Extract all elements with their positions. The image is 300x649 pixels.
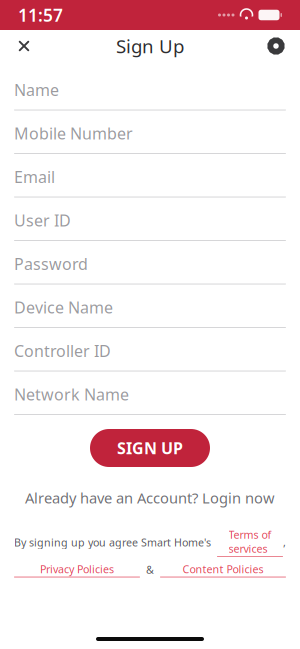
button[interactable]: Settings <box>256 30 296 62</box>
staticText: 11:57 <box>18 3 63 26</box>
staticText: Already have an Account? Login now <box>25 488 275 507</box>
staticText: , <box>283 535 286 549</box>
staticText: Content Policies <box>182 562 263 576</box>
button[interactable]: Terms of services <box>217 527 283 557</box>
staticText: Name <box>14 79 59 100</box>
staticText: SIGN UP <box>117 437 183 459</box>
staticText: Device Name <box>14 297 113 318</box>
staticText: Mobile Number <box>14 123 133 144</box>
staticText: Network Name <box>14 384 129 405</box>
staticText: Password <box>14 253 88 274</box>
staticText: & <box>140 563 160 577</box>
staticText: Controller ID <box>14 340 111 361</box>
button[interactable]: Close <box>4 30 44 62</box>
staticText: Email <box>14 166 55 187</box>
staticText: Privacy Policies <box>40 562 114 576</box>
staticText: Sign Up <box>116 34 184 58</box>
staticText: Terms of services <box>228 527 271 556</box>
button[interactable]: Content Policies <box>160 562 286 577</box>
button[interactable]: Already have an Account? Login now <box>25 488 275 507</box>
staticText: User ID <box>14 210 71 231</box>
staticText: By signing up you agree Smart Home's <box>14 535 217 549</box>
button[interactable]: SIGN UP <box>90 429 210 467</box>
button[interactable]: Privacy Policies <box>14 562 140 577</box>
